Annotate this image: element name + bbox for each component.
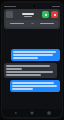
button[interactable]: Mute <box>38 23 56 24</box>
button[interactable]: Answer call <box>42 11 49 18</box>
button[interactable]: Recents <box>46 110 52 116</box>
button[interactable]: Home <box>29 110 35 116</box>
button[interactable] <box>11 49 60 61</box>
button[interactable]: Answer call <box>4 9 60 29</box>
button[interactable] <box>10 80 60 92</box>
button[interactable]: Back <box>13 110 19 116</box>
button[interactable]: Reply with message <box>8 23 26 24</box>
button[interactable]: Expand <box>26 22 38 25</box>
button[interactable]: Decline call <box>51 11 58 18</box>
button[interactable] <box>4 63 57 78</box>
